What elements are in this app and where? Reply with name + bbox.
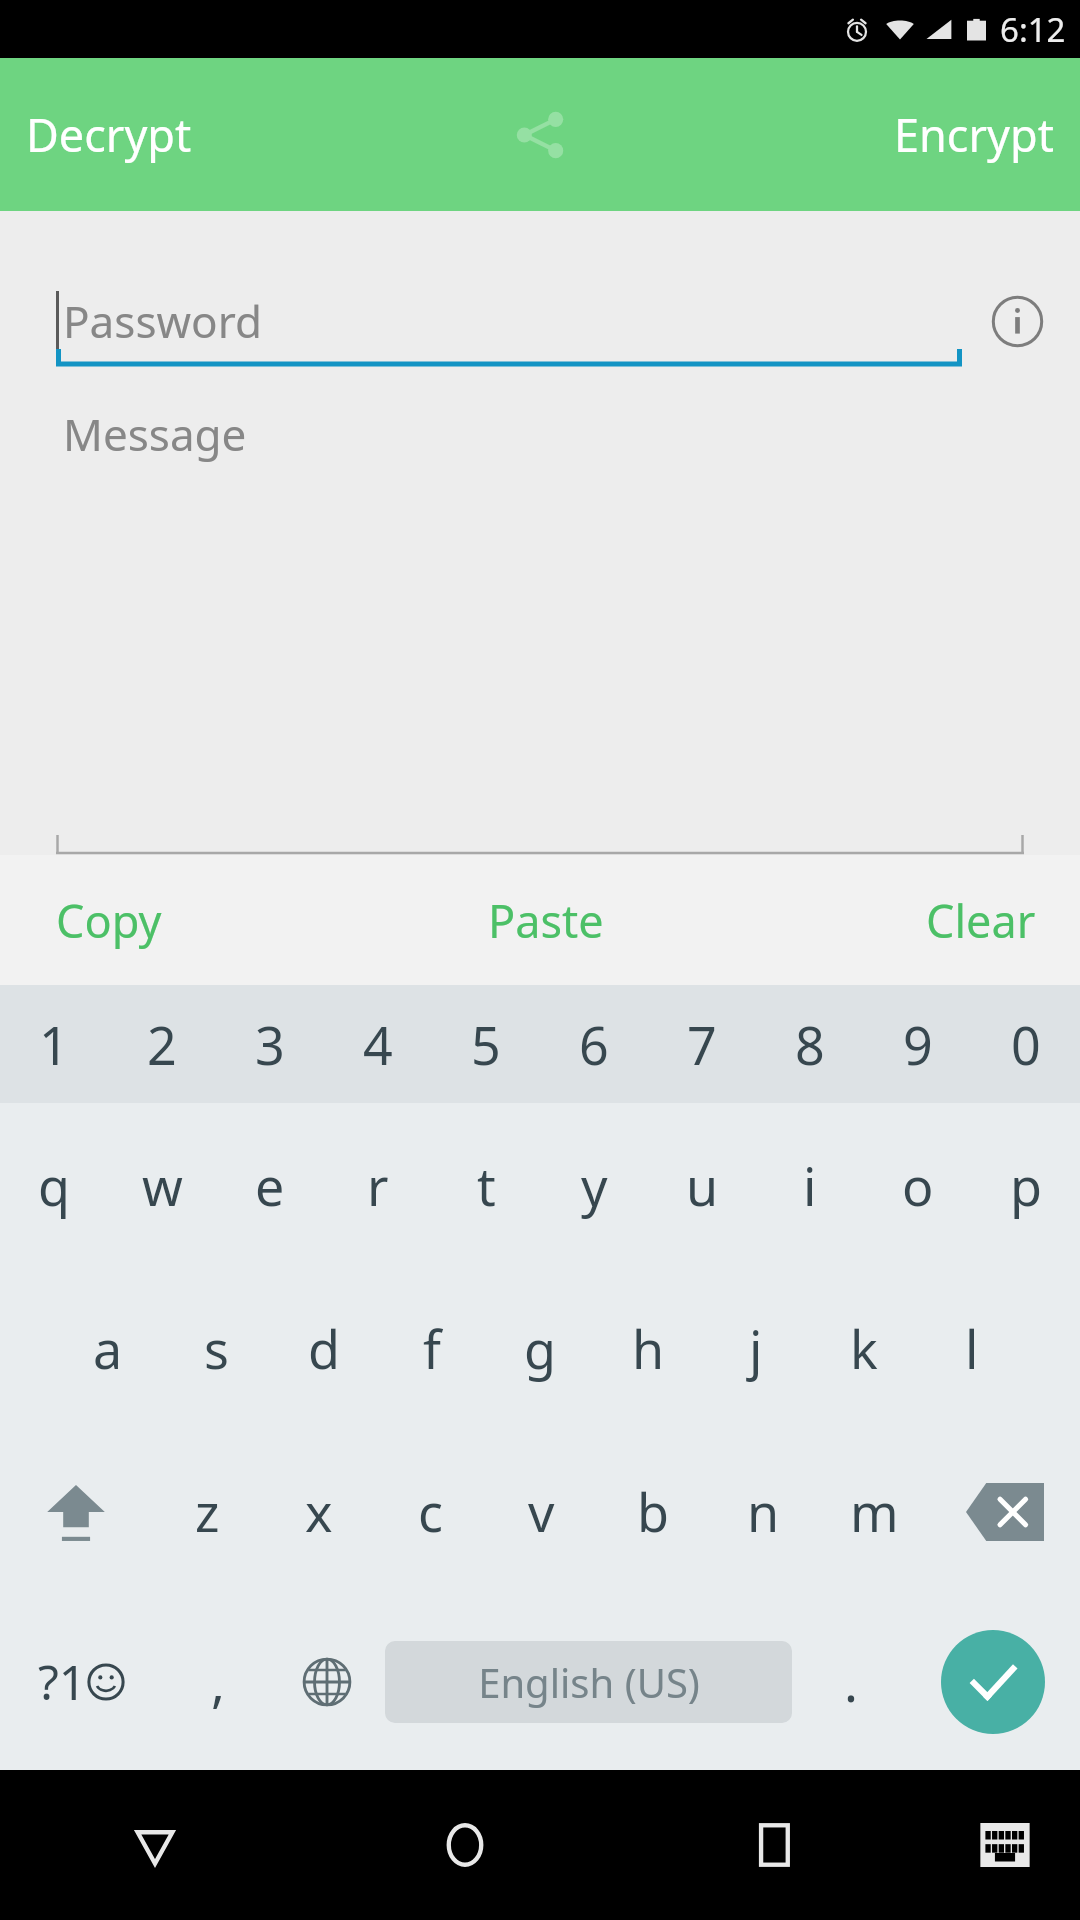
button[interactable]: u [648,1103,756,1267]
staticText: k [850,1313,878,1384]
button[interactable]: Enter [905,1593,1080,1770]
button[interactable]: z [151,1430,263,1593]
staticText: t [477,1150,496,1221]
button[interactable]: o [864,1103,972,1267]
staticText: v [528,1476,555,1547]
staticText: j [749,1313,763,1384]
staticText: 7 [687,1009,717,1080]
staticText: q [38,1150,70,1221]
button[interactable]: Message [56,376,1024,855]
button[interactable]: 5 [432,985,540,1103]
staticText: f [423,1313,441,1384]
staticText: a [93,1313,123,1384]
staticText: o [902,1150,934,1221]
button[interactable]: 4 [324,985,432,1103]
button[interactable]: Share [485,80,595,190]
staticText: , [211,1646,225,1717]
staticText: n [747,1476,780,1547]
button[interactable]: a [54,1267,162,1430]
staticText: z [195,1476,220,1547]
button[interactable]: i [756,1103,864,1267]
staticText: m [850,1476,899,1547]
button[interactable]: Change language [272,1593,381,1770]
button[interactable]: Symbols [0,1593,163,1770]
button[interactable]: d [270,1267,378,1430]
staticText: Password [63,291,263,351]
button[interactable]: e [216,1103,324,1267]
button[interactable]: Clear [720,855,1080,985]
button[interactable]: p [972,1103,1080,1267]
button[interactable]: n [708,1430,819,1593]
button[interactable]: Hide keyboard [930,1770,1080,1920]
button[interactable]: Paste [360,855,720,985]
button[interactable]: Shift [0,1430,151,1593]
button[interactable]: x [263,1430,375,1593]
staticText: c [418,1476,443,1547]
button[interactable]: Back [0,1770,310,1920]
button[interactable]: Copy [0,855,360,985]
staticText: 5 [471,1009,501,1080]
button[interactable]: 0 [972,985,1080,1103]
button[interactable]: 3 [216,985,324,1103]
button[interactable]: 2 [108,985,216,1103]
button[interactable]: 8 [756,985,864,1103]
button[interactable]: Encrypt [868,58,1080,211]
staticText: u [686,1150,719,1221]
staticText: Decrypt [26,104,192,165]
button[interactable]: Decrypt [0,58,218,211]
staticText: p [1010,1150,1042,1221]
button[interactable]: r [324,1103,432,1267]
button[interactable]: j [702,1267,810,1430]
button[interactable]: Password [56,275,962,367]
button[interactable]: f [378,1267,486,1430]
staticText: 6 [579,1009,609,1080]
staticText: . [844,1646,858,1717]
staticText: 1 [39,1009,69,1080]
button[interactable]: l [918,1267,1026,1430]
staticText: w [142,1150,183,1221]
button[interactable]: v [486,1430,597,1593]
staticText: English (US) [478,1655,700,1709]
staticText: ?1 [38,1649,87,1714]
button[interactable]: g [486,1267,594,1430]
button[interactable]: Backspace [930,1430,1080,1593]
button[interactable]: t [432,1103,540,1267]
button[interactable]: 1 [0,985,108,1103]
staticText: g [524,1313,556,1384]
button[interactable]: Home [310,1770,620,1920]
button[interactable]: b [597,1430,708,1593]
button[interactable]: English (US) [385,1641,792,1723]
button[interactable]: 9 [864,985,972,1103]
staticText: e [255,1150,285,1221]
button[interactable]: k [810,1267,918,1430]
staticText: 6:12 [1000,7,1066,52]
staticText: y [581,1150,608,1221]
staticText: 3 [255,1009,285,1080]
staticText: Paste [488,890,604,951]
button[interactable]: 7 [648,985,756,1103]
staticText: h [632,1313,665,1384]
staticText: 2 [147,1009,177,1080]
button[interactable]: w [108,1103,216,1267]
button[interactable]: , [163,1593,272,1770]
staticText: 9 [903,1009,933,1080]
button[interactable]: c [375,1430,486,1593]
staticText: i [803,1150,817,1221]
button[interactable]: h [594,1267,702,1430]
staticText: d [308,1313,340,1384]
staticText: 0 [1011,1009,1041,1080]
staticText: Clear [926,890,1036,951]
staticText: l [965,1313,979,1384]
button[interactable]: Recent apps [620,1770,930,1920]
button[interactable]: s [162,1267,270,1430]
button[interactable]: y [540,1103,648,1267]
button[interactable]: 6 [540,985,648,1103]
staticText: Copy [56,890,162,951]
button[interactable]: m [819,1430,930,1593]
staticText: Encrypt [894,104,1054,165]
button[interactable]: Info [962,266,1072,376]
staticText: s [204,1313,229,1384]
button[interactable]: q [0,1103,108,1267]
staticText: r [367,1150,389,1221]
button[interactable]: . [796,1593,905,1770]
